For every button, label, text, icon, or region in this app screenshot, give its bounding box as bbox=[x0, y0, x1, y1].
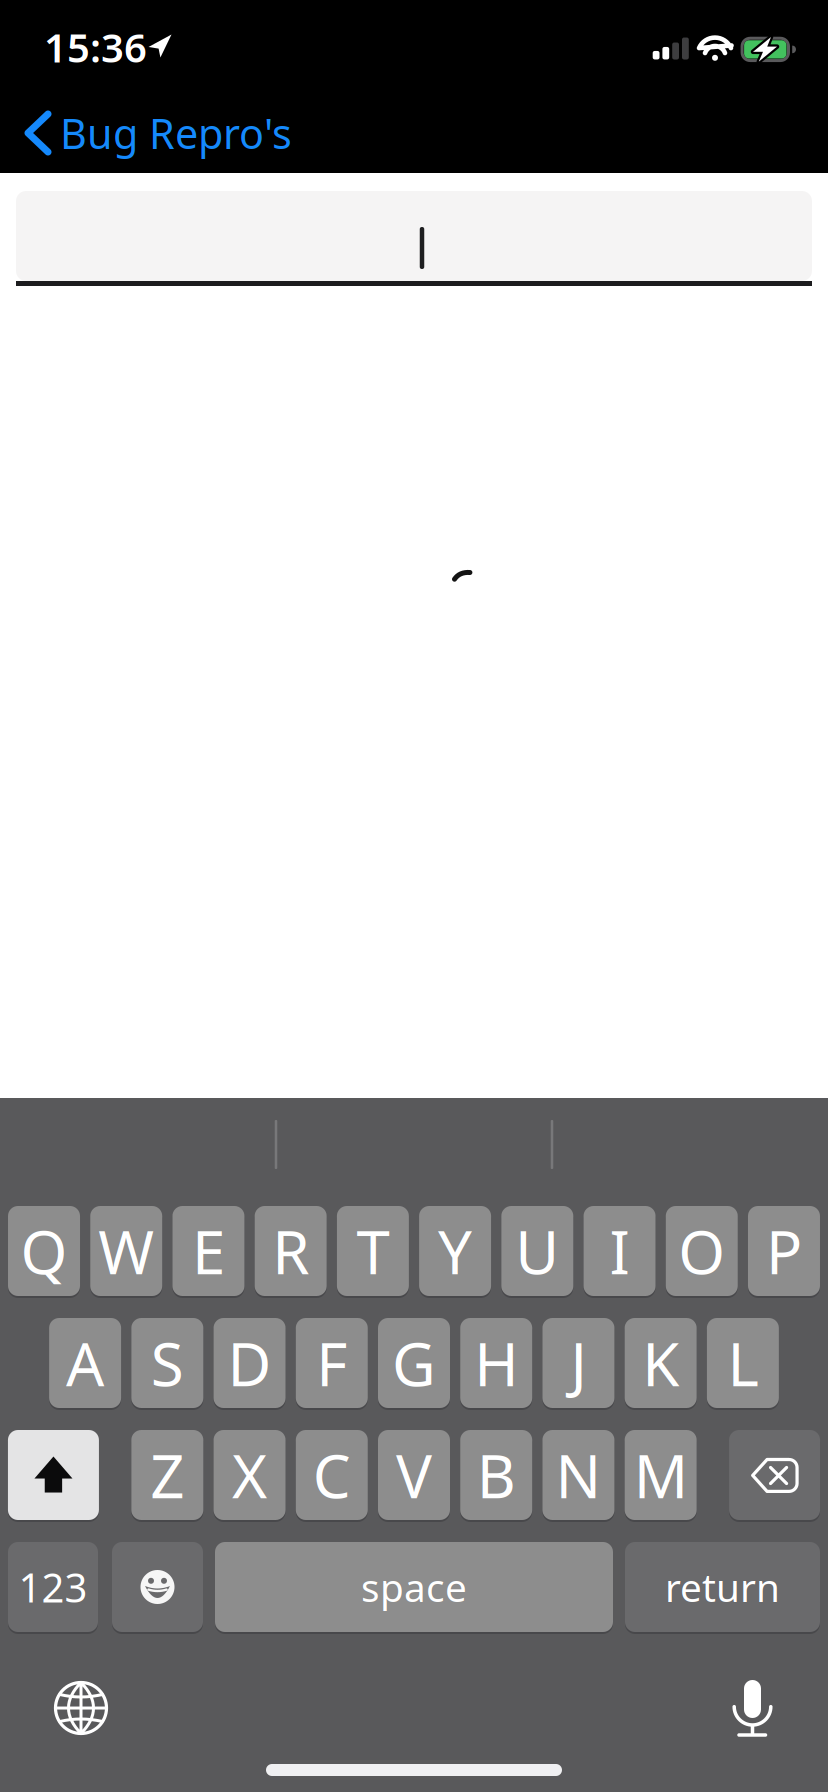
button[interactable]: R bbox=[255, 1206, 327, 1296]
staticText: V bbox=[396, 1435, 432, 1515]
staticText: R bbox=[272, 1211, 309, 1291]
staticText: 15:36 bbox=[44, 20, 147, 73]
button[interactable]: Y bbox=[419, 1206, 491, 1296]
staticText: I bbox=[610, 1211, 630, 1291]
staticText: Z bbox=[150, 1435, 184, 1515]
button[interactable]: P bbox=[748, 1206, 820, 1296]
button[interactable]: Emoji bbox=[112, 1542, 203, 1632]
button[interactable]: C bbox=[296, 1430, 368, 1520]
staticText: O bbox=[678, 1211, 725, 1291]
staticText: 123 bbox=[18, 1560, 87, 1613]
staticText: N bbox=[555, 1435, 601, 1515]
button[interactable]: J bbox=[542, 1318, 614, 1408]
button[interactable]: M bbox=[625, 1430, 697, 1520]
staticText: G bbox=[392, 1323, 436, 1403]
button[interactable]: W bbox=[90, 1206, 162, 1296]
staticText: F bbox=[316, 1323, 347, 1403]
staticText: D bbox=[228, 1323, 272, 1403]
button[interactable]: Q bbox=[8, 1206, 80, 1296]
button[interactable]: L bbox=[707, 1318, 779, 1408]
staticText: S bbox=[151, 1323, 184, 1403]
staticText: space bbox=[361, 1561, 467, 1613]
staticText: Q bbox=[20, 1211, 67, 1291]
staticText: P bbox=[766, 1211, 802, 1291]
staticText: return bbox=[665, 1561, 780, 1613]
button[interactable]: A bbox=[49, 1318, 121, 1408]
staticText: H bbox=[474, 1323, 518, 1403]
staticText: C bbox=[313, 1435, 351, 1515]
button[interactable]: E bbox=[172, 1206, 244, 1296]
button[interactable]: Text field bbox=[16, 191, 812, 281]
button[interactable]: Delete bbox=[729, 1430, 820, 1520]
button[interactable]: T bbox=[337, 1206, 409, 1296]
button[interactable]: Bug Repro's bbox=[23, 102, 443, 164]
staticText: E bbox=[192, 1211, 225, 1291]
button[interactable]: O bbox=[666, 1206, 738, 1296]
staticText: K bbox=[642, 1323, 679, 1403]
staticText: Y bbox=[438, 1211, 472, 1291]
button[interactable]: X bbox=[214, 1430, 286, 1520]
button[interactable]: Shift bbox=[8, 1430, 99, 1520]
button[interactable]: K bbox=[625, 1318, 697, 1408]
staticText: L bbox=[727, 1323, 758, 1403]
button[interactable]: U bbox=[501, 1206, 573, 1296]
button[interactable]: S bbox=[131, 1318, 203, 1408]
staticText: B bbox=[477, 1435, 516, 1515]
button[interactable]: space bbox=[215, 1542, 613, 1632]
staticText: J bbox=[570, 1323, 586, 1403]
button[interactable]: return bbox=[625, 1542, 820, 1632]
staticText: T bbox=[356, 1211, 389, 1291]
button[interactable]: Next keyboard bbox=[48, 1675, 114, 1741]
staticText: Bug Repro's bbox=[60, 106, 292, 160]
staticText: W bbox=[98, 1211, 154, 1291]
button[interactable]: D bbox=[214, 1318, 286, 1408]
button[interactable]: I bbox=[584, 1206, 656, 1296]
button[interactable]: Dictation bbox=[719, 1675, 785, 1741]
button[interactable]: F bbox=[296, 1318, 368, 1408]
button[interactable]: B bbox=[460, 1430, 532, 1520]
button[interactable]: 123 bbox=[8, 1542, 98, 1632]
staticText: M bbox=[634, 1435, 688, 1515]
button[interactable]: V bbox=[378, 1430, 450, 1520]
button[interactable]: N bbox=[542, 1430, 614, 1520]
staticText: A bbox=[66, 1323, 104, 1403]
staticText: X bbox=[232, 1435, 267, 1515]
button[interactable]: H bbox=[460, 1318, 532, 1408]
button[interactable]: Z bbox=[131, 1430, 203, 1520]
button[interactable]: G bbox=[378, 1318, 450, 1408]
staticText: U bbox=[515, 1211, 559, 1291]
